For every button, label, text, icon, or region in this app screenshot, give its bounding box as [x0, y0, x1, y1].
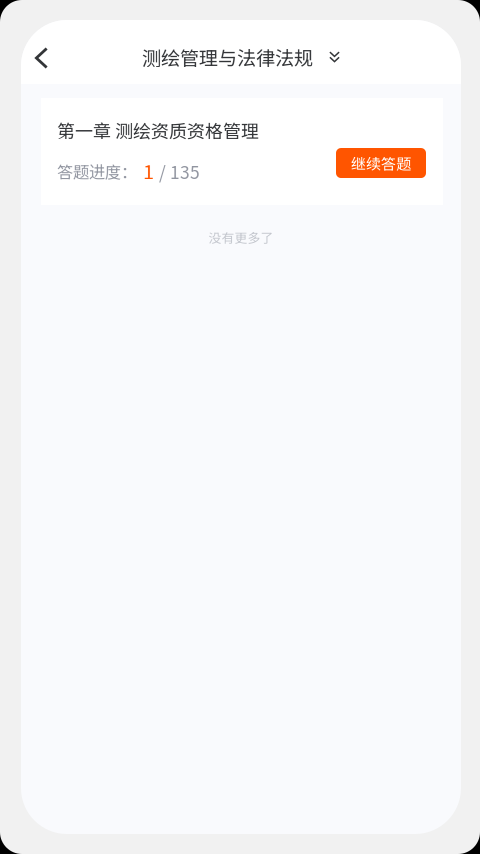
staticText: 测绘管理与法律法规	[142, 43, 313, 71]
staticText: 答题进度：	[57, 159, 137, 183]
staticText: 第一章 测绘资质资格管理	[57, 117, 259, 143]
staticText: 没有更多了	[208, 228, 273, 246]
staticText: / 135	[159, 159, 200, 184]
staticText: 继续答题	[351, 152, 411, 174]
button[interactable]: 返回	[21, 33, 64, 81]
staticText: 1	[143, 156, 154, 185]
button[interactable]: 继续答题	[336, 148, 426, 183]
